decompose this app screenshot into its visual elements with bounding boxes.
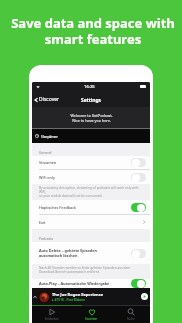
staticText: The Joe Rogan Experience — [52, 292, 104, 297]
button[interactable]: Discover — [32, 94, 62, 105]
staticText: By activating this option, streaming of … — [39, 186, 146, 198]
staticText: ▸ #1516 - Post Malone — [52, 298, 86, 302]
staticText: Settings — [81, 97, 102, 104]
staticText: Suche — [127, 317, 135, 321]
button[interactable]: Sleeptimer — [32, 129, 150, 143]
staticText: Streamen — [39, 160, 131, 165]
staticText: 16:25 — [84, 84, 95, 90]
staticText: Podcasts — [39, 236, 54, 241]
staticText: Favoriten — [85, 317, 98, 321]
other: Expand player — [33, 295, 37, 299]
button[interactable]: Favoriten — [72, 306, 111, 323]
staticText: Welcome to GetPodcast. Nice to have you … — [70, 113, 113, 123]
staticText: Auto Delete – gehörte Episoden automatis… — [39, 248, 131, 258]
button[interactable]: Play — [141, 293, 148, 300]
staticText: Sleeptimer — [41, 134, 58, 138]
button[interactable]: Entdecken — [32, 306, 72, 323]
staticText: Nach 48 Stunden werden zu Ende gehörte E… — [39, 266, 131, 274]
button[interactable]: Expand player — [32, 288, 150, 305]
staticText: Exit — [39, 220, 142, 225]
button[interactable]: Auto Delete – gehörte Episoden automatis… — [32, 242, 150, 264]
button[interactable]: Suche — [111, 306, 150, 323]
staticText: Save data and space with smart features — [2, 14, 182, 48]
staticText: Auto-Play – Automatische Wiedergabe — [39, 281, 131, 286]
staticText: Discover — [39, 96, 60, 103]
button[interactable]: Haptisches Feedback — [32, 200, 150, 214]
button[interactable]: Streamen — [32, 156, 150, 169]
button[interactable]: WiFi only — [32, 170, 150, 184]
staticText: Entdecken — [45, 317, 59, 321]
button[interactable]: Auto-Play – Automatische Wiedergabe — [32, 279, 150, 288]
staticText: Haptisches Feedback — [39, 205, 131, 210]
button[interactable]: Exit — [32, 215, 150, 229]
staticText: General — [39, 150, 52, 155]
staticText: WiFi only — [39, 175, 131, 180]
